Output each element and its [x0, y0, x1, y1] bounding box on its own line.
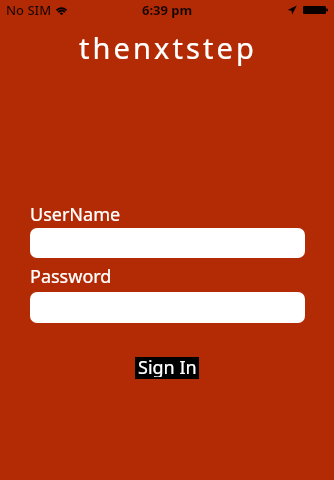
button[interactable]: Sign In	[135, 357, 199, 379]
button[interactable]: Password input	[30, 292, 305, 323]
staticText: Password	[30, 264, 112, 289]
other: Battery full	[303, 6, 328, 14]
staticText: thenxtstep	[1, 28, 334, 67]
other: Wi-Fi signal	[55, 6, 68, 15]
staticText: UserName	[30, 202, 121, 227]
staticText: No SIM	[6, 1, 52, 19]
staticText: Sign In	[138, 355, 197, 377]
staticText: 6:39 pm	[142, 1, 193, 19]
button[interactable]: UserName input	[30, 228, 305, 258]
other: Location services active	[287, 5, 297, 15]
